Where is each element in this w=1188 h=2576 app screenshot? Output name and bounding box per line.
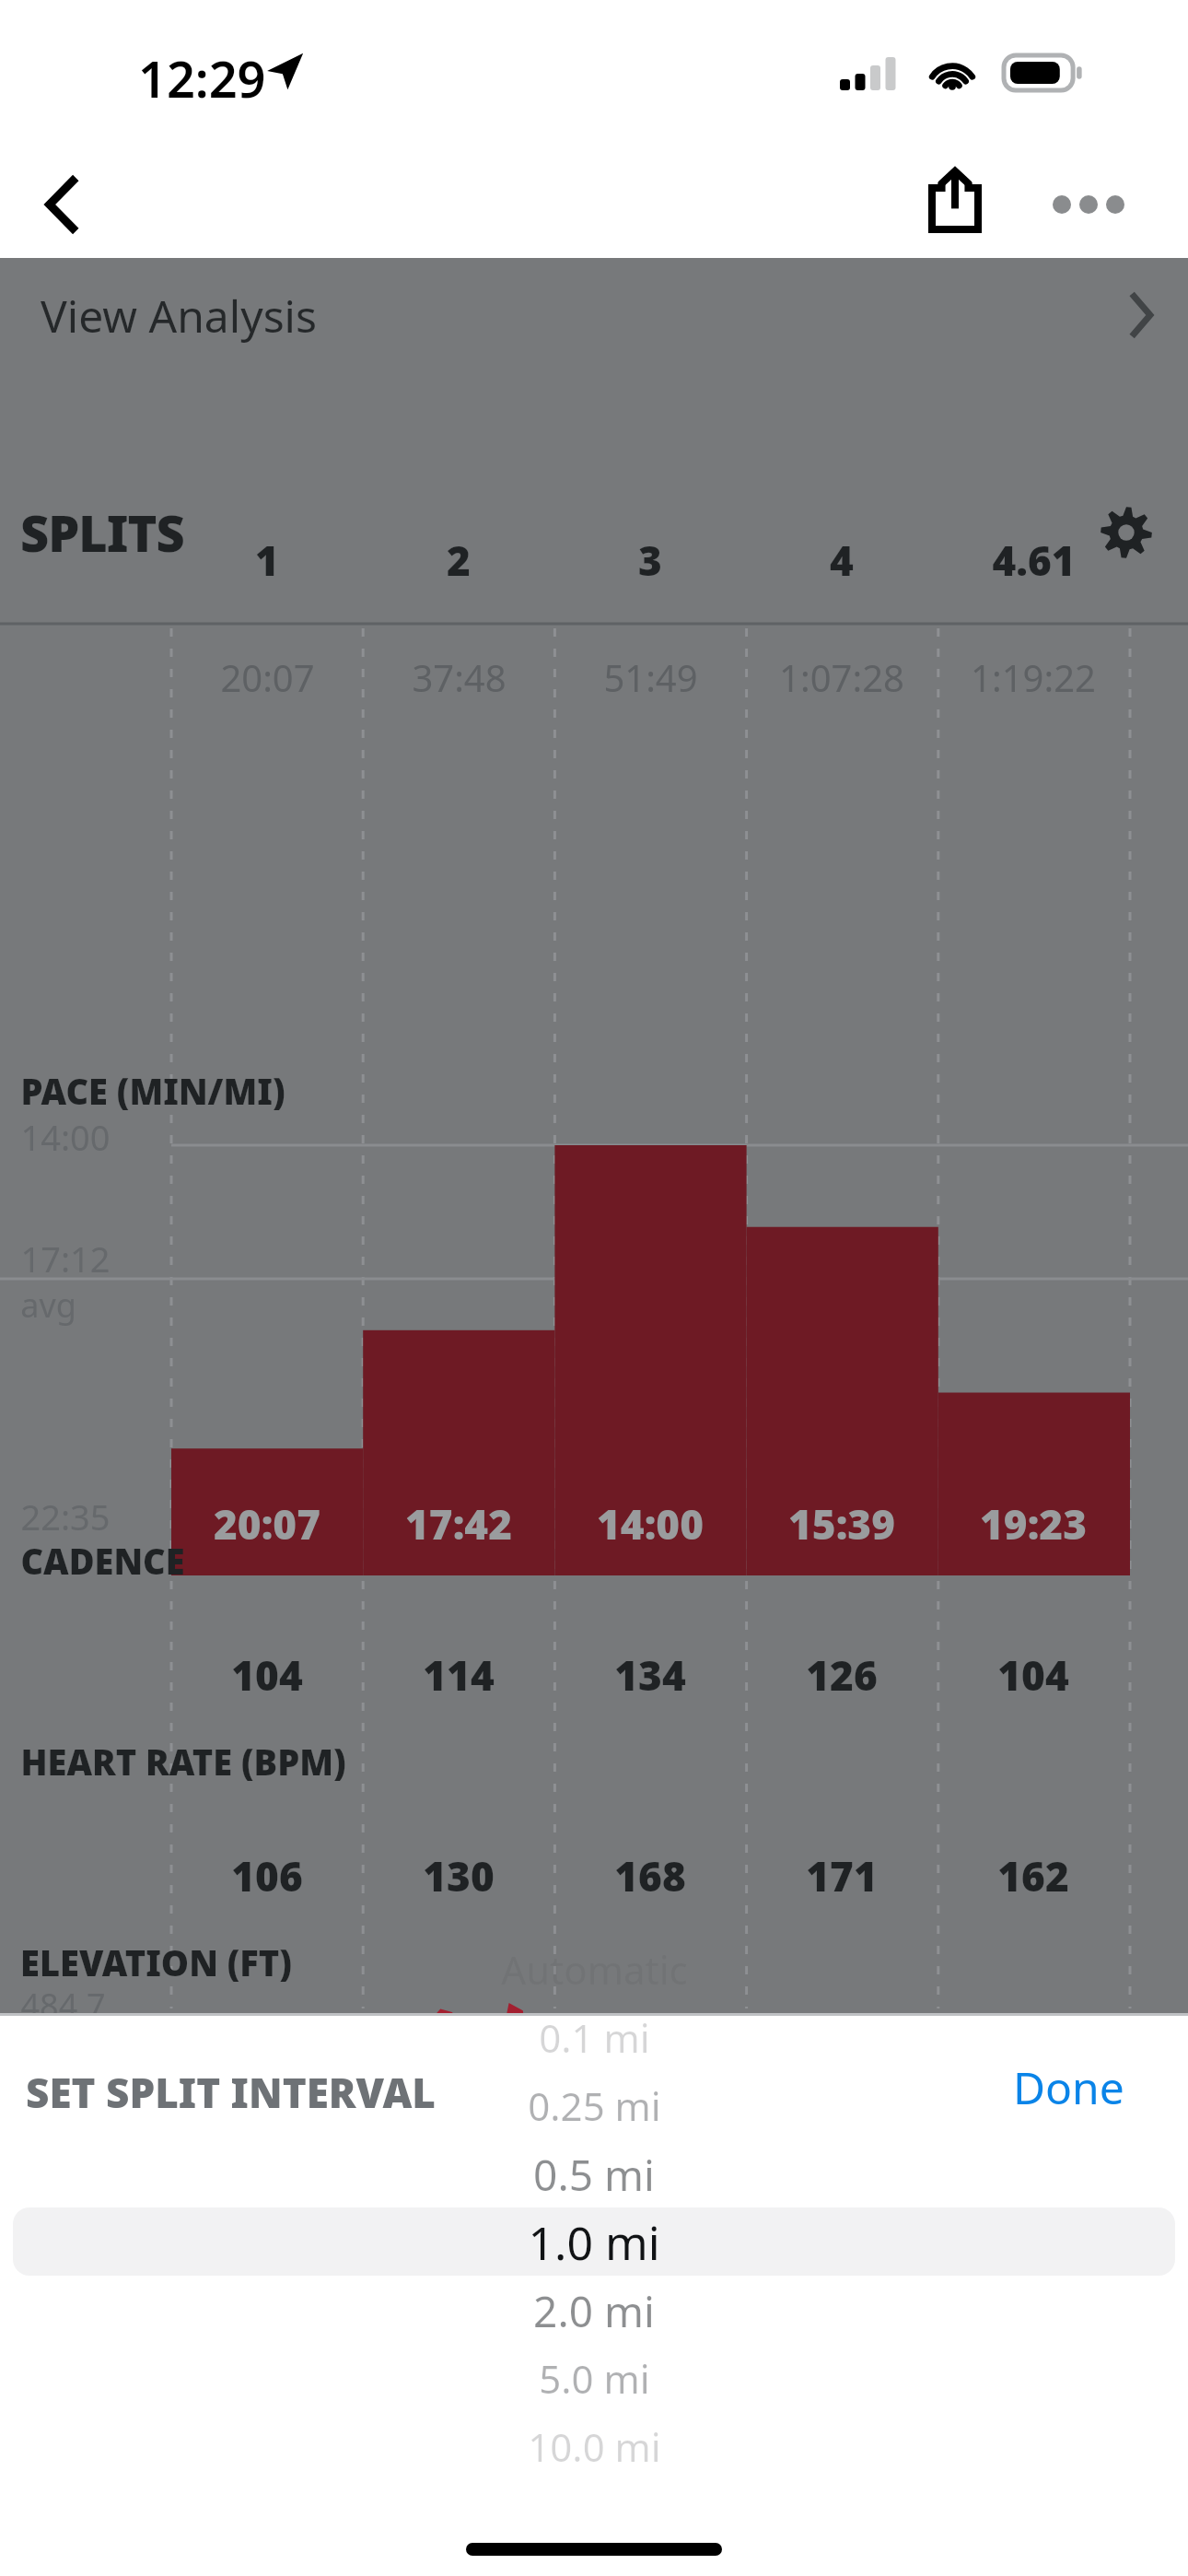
staticText: 171 [806,1848,878,1903]
staticText: 19:23 [980,1496,1087,1551]
staticText: 4 [830,533,854,588]
staticText: 104 [231,1647,303,1703]
staticText: 2.0 mi [533,2282,655,2337]
button[interactable]: 0.25 mi [0,2079,1188,2130]
staticText: 130 [423,1848,495,1903]
button[interactable]: Back [17,158,109,251]
staticText: HEART RATE (BPM) [20,1738,346,1786]
staticText: 10.0 mi [528,2420,661,2471]
staticText: 1.0 mi [528,2211,660,2271]
staticText: 114 [423,1647,495,1703]
staticText: 1:19:22 [971,652,1096,702]
staticText: 484.7 [20,1983,106,2028]
staticText: 104 [997,1647,1069,1703]
staticText: SPLITS [20,498,184,567]
staticText: avg [20,1282,76,1328]
staticText: 20:07 [214,1496,320,1551]
staticText: CADENCE [20,1537,185,1585]
staticText: 17:12 [20,1235,111,1282]
staticText: 14:00 [20,1113,111,1161]
staticText: PACE (MIN/MI) [20,1067,285,1115]
staticText: 2 [447,533,471,588]
button[interactable]: Split settings [1083,489,1170,576]
button[interactable]: View Analysis [0,258,1188,372]
staticText: 15:39 [788,1496,895,1551]
button[interactable]: 5.0 mi [0,2352,1188,2403]
staticText: 17:42 [405,1496,512,1551]
staticText: Done [1013,2057,1124,2117]
staticText: 12:29 [138,44,266,112]
staticText: 1:07:28 [779,652,904,702]
staticText: 37:48 [412,652,507,702]
staticText: 126 [806,1647,878,1703]
button[interactable]: Automatic [0,1943,1188,1994]
staticText: 14:00 [597,1496,704,1551]
button[interactable]: 2.0 mi [0,2282,1188,2337]
staticText: 0.25 mi [528,2079,661,2130]
button[interactable]: 0.1 mi [0,2011,1188,2062]
staticText: 134 [614,1647,686,1703]
staticText: 22:35 [20,1493,111,1540]
staticText: 0.5 mi [533,2146,655,2201]
staticText: 168 [614,1848,686,1903]
staticText: 51:49 [603,652,698,702]
staticText: 0.1 mi [539,2011,650,2062]
staticText: 5.0 mi [539,2352,650,2403]
button[interactable]: Share [907,153,1003,249]
button[interactable]: 10.0 mi [0,2420,1188,2471]
staticText: 106 [231,1848,303,1903]
staticText: ELEVATION (FT) [20,1938,292,1986]
button[interactable] [13,2207,1175,2276]
button[interactable]: More options [1037,153,1140,256]
button[interactable]: Done [1013,2046,1168,2127]
staticText: 162 [997,1848,1069,1903]
staticText: 1 [255,533,279,588]
staticText: SET SPLIT INTERVAL [26,2065,436,2120]
staticText: View Analysis [41,286,318,345]
staticText: 3 [638,533,662,588]
button[interactable]: 0.5 mi [0,2146,1188,2201]
staticText: 20:07 [220,652,315,702]
staticText: 4.61 [992,533,1076,588]
button[interactable]: 1.0 mi [0,2211,1188,2271]
